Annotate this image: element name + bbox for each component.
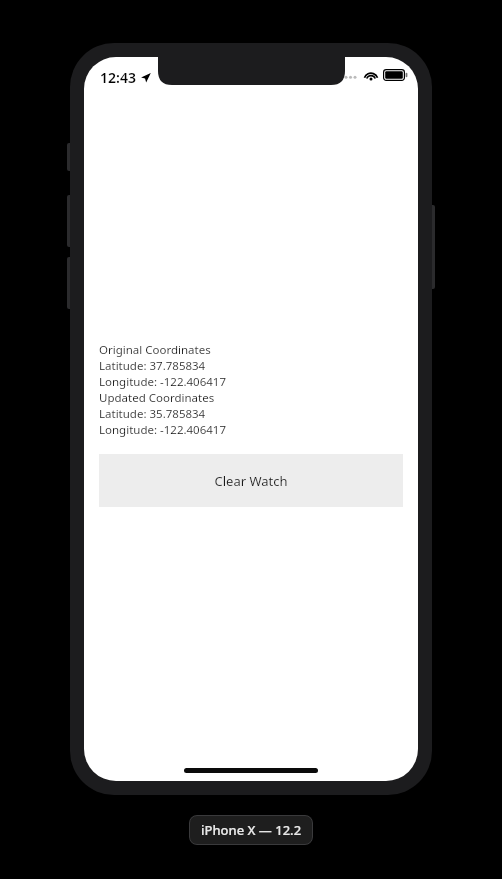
other: Home indicator <box>184 768 318 773</box>
staticText: 12:43 <box>100 68 136 87</box>
staticText: Original Coordinates <box>99 342 211 358</box>
staticText: Updated Coordinates <box>99 390 215 406</box>
staticText: Clear Watch <box>214 472 288 490</box>
staticText: Latitude: 37.785834 <box>99 358 206 374</box>
staticText: Longitude: -122.406417 <box>99 422 227 438</box>
staticText: Latitude: 35.785834 <box>99 406 206 422</box>
staticText: Longitude: -122.406417 <box>99 374 227 390</box>
button[interactable]: iPhone X — 12.2 <box>189 815 313 845</box>
button[interactable]: Clear Watch <box>99 454 403 507</box>
staticText: iPhone X — 12.2 <box>201 821 302 839</box>
